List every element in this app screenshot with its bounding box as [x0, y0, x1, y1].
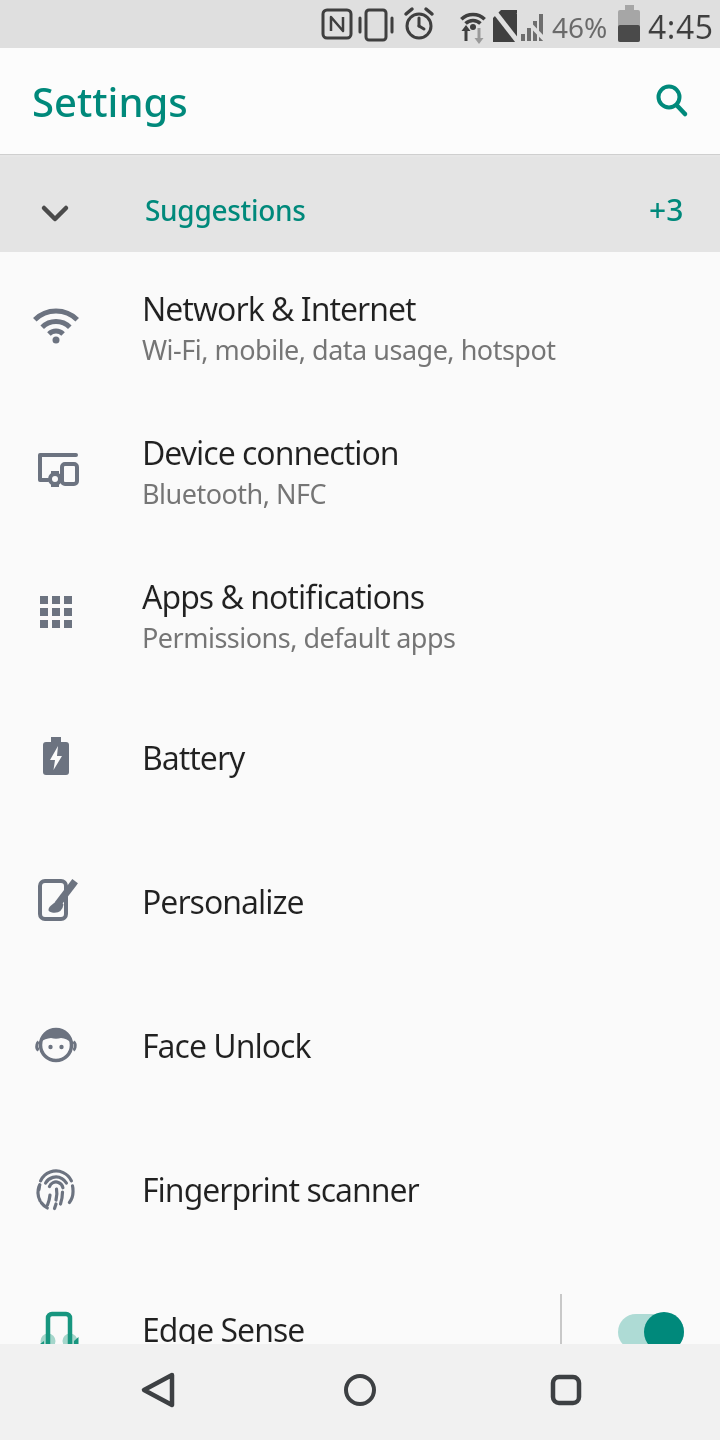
- staticText: Personalize: [142, 880, 304, 924]
- staticText: Edge Sense: [142, 1308, 305, 1352]
- button[interactable]: Suggestions: [0, 157, 720, 252]
- staticText: +3: [649, 189, 684, 230]
- staticText: Settings: [32, 74, 188, 128]
- staticText: 4:45: [648, 5, 714, 49]
- staticText: Device connection: [142, 431, 399, 475]
- button[interactable]: [542, 1366, 590, 1414]
- staticText: Battery: [142, 736, 245, 780]
- button[interactable]: Edge Sense: [0, 1260, 720, 1404]
- button[interactable]: Battery: [0, 684, 720, 828]
- staticText: Apps & notifications: [142, 575, 424, 619]
- button[interactable]: [134, 1366, 182, 1414]
- button[interactable]: Fingerprint scanner: [0, 1116, 720, 1260]
- button[interactable]: [336, 1366, 384, 1414]
- button[interactable]: [618, 1312, 684, 1352]
- staticText: Wi-Fi, mobile, data usage, hotspot: [142, 331, 556, 368]
- staticText: Network & Internet: [142, 287, 416, 331]
- button[interactable]: Personalize: [0, 828, 720, 972]
- button[interactable]: [648, 77, 696, 125]
- staticText: Fingerprint scanner: [142, 1168, 419, 1212]
- button[interactable]: Network & Internet: [0, 252, 720, 396]
- staticText: Suggestions: [145, 191, 306, 229]
- staticText: Bluetooth, NFC: [142, 475, 327, 512]
- button[interactable]: Device connection: [0, 396, 720, 540]
- button[interactable]: Apps & notifications: [0, 540, 720, 684]
- staticText: Permissions, default apps: [142, 619, 456, 656]
- staticText: Face Unlock: [142, 1024, 311, 1068]
- button[interactable]: Face Unlock: [0, 972, 720, 1116]
- staticText: 46%: [552, 8, 608, 46]
